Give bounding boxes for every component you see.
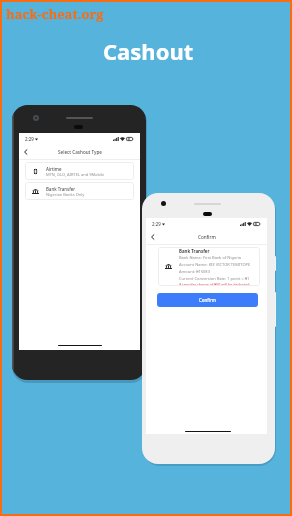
staticText: Bank Transfer xyxy=(179,248,210,254)
staticText: Cashout xyxy=(103,36,194,66)
staticText: A transfer charge of ₦50 will be deducte… xyxy=(179,282,250,286)
button[interactable]: Bank Transfer xyxy=(25,182,134,200)
button[interactable]: Airtime xyxy=(25,162,134,180)
staticText: Amount: ₦15083 xyxy=(179,269,210,274)
staticText: Select Cashout Type xyxy=(58,149,102,155)
staticText: Account Name: KIE VICTOR TEMITOPE xyxy=(179,262,251,267)
staticText: Nigerian Banks Only xyxy=(46,192,85,197)
staticText: Airtime xyxy=(46,166,62,172)
button[interactable]: Back xyxy=(21,147,31,157)
button[interactable]: Confirm xyxy=(157,293,258,307)
button[interactable]: Back xyxy=(148,232,158,242)
staticText: 2:29 xyxy=(152,221,161,227)
staticText: Confirm xyxy=(198,234,216,240)
staticText: hack-cheat.org xyxy=(6,5,104,23)
staticText: Confirm xyxy=(199,297,216,303)
staticText: Bank Name: First Bank of Nigeria xyxy=(179,255,242,260)
staticText: Current Conversion Rate: 1 point = ₦1 xyxy=(179,276,250,281)
staticText: Bank Transfer xyxy=(46,186,76,192)
staticText: MTN, GLO, AIRTEL and 9Mobile xyxy=(46,172,105,177)
staticText: 2:29 xyxy=(25,136,34,142)
